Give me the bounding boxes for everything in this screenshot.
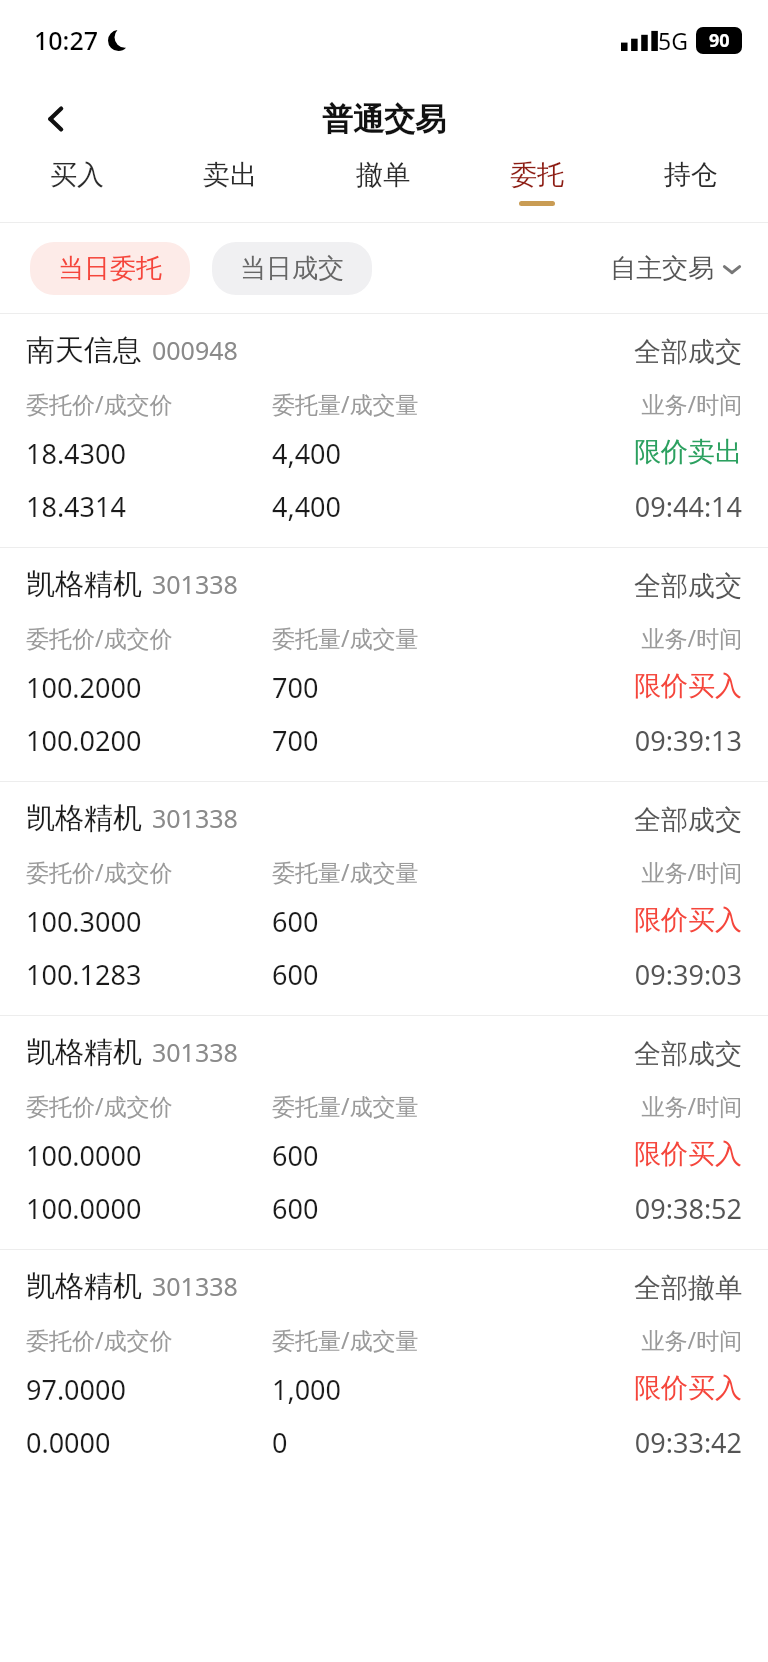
staticText: 南天信息: [26, 332, 142, 369]
staticText: 委托量/成交量: [272, 1324, 419, 1355]
staticText: 限价买入: [634, 903, 742, 937]
button[interactable]: 委托: [460, 158, 614, 222]
staticText: 凯格精机: [26, 1034, 142, 1071]
staticText: 业务/时间: [641, 622, 742, 653]
staticText: 600: [272, 1190, 319, 1227]
staticText: 委托价/成交价: [26, 1090, 173, 1121]
staticText: 业务/时间: [641, 1090, 742, 1121]
staticText: 业务/时间: [641, 1324, 742, 1355]
staticText: 业务/时间: [641, 388, 742, 419]
button[interactable]: 凯格精机: [0, 547, 768, 781]
staticText: 委托价/成交价: [26, 622, 173, 653]
staticText: 301338: [152, 567, 238, 601]
button[interactable]: 凯格精机: [0, 1015, 768, 1249]
staticText: 09:33:42: [634, 1424, 742, 1461]
staticText: 600: [272, 903, 319, 940]
button[interactable]: 买入: [0, 158, 153, 222]
staticText: 97.0000: [26, 1371, 126, 1408]
staticText: 09:39:13: [634, 722, 742, 759]
button[interactable]: 当日委托: [30, 242, 190, 295]
staticText: 撤单: [356, 158, 410, 192]
staticText: 700: [272, 722, 319, 759]
staticText: 100.3000: [26, 903, 142, 940]
staticText: 09:38:52: [634, 1190, 742, 1227]
button[interactable]: 自主交易: [610, 252, 742, 285]
staticText: 凯格精机: [26, 566, 142, 603]
button[interactable]: Back: [34, 97, 78, 141]
staticText: 0: [272, 1424, 288, 1461]
staticText: 301338: [152, 801, 238, 835]
button[interactable]: 凯格精机: [0, 781, 768, 1015]
staticText: 限价买入: [634, 1371, 742, 1405]
staticText: 委托量/成交量: [272, 388, 419, 419]
button[interactable]: 南天信息: [0, 313, 768, 547]
staticText: 卖出: [203, 158, 257, 192]
staticText: 业务/时间: [641, 856, 742, 887]
staticText: 0.0000: [26, 1424, 111, 1461]
staticText: 100.0200: [26, 722, 142, 759]
staticText: 全部撤单: [634, 1271, 742, 1305]
staticText: 委托量/成交量: [272, 622, 419, 653]
staticText: 当日成交: [240, 252, 344, 285]
button[interactable]: 凯格精机: [0, 1249, 768, 1483]
staticText: 4,400: [272, 435, 342, 472]
button[interactable]: 当日成交: [212, 242, 372, 295]
staticText: 当日委托: [58, 252, 162, 285]
staticText: 09:39:03: [634, 956, 742, 993]
staticText: 持仓: [664, 158, 718, 192]
button[interactable]: 撤单: [306, 158, 460, 222]
staticText: 凯格精机: [26, 800, 142, 837]
staticText: 100.0000: [26, 1137, 142, 1174]
staticText: 100.0000: [26, 1190, 142, 1227]
staticText: 委托量/成交量: [272, 856, 419, 887]
staticText: 委托价/成交价: [26, 1324, 173, 1355]
staticText: 18.4314: [26, 488, 126, 525]
staticText: 10:27: [34, 23, 99, 57]
staticText: 000948: [152, 333, 238, 367]
staticText: 5G: [658, 25, 688, 56]
staticText: 4,400: [272, 488, 342, 525]
staticText: 09:44:14: [634, 488, 742, 525]
staticText: 限价卖出: [634, 435, 742, 469]
staticText: 1,000: [272, 1371, 342, 1408]
staticText: 全部成交: [634, 569, 742, 603]
button[interactable]: 持仓: [614, 158, 768, 222]
staticText: 700: [272, 669, 319, 706]
staticText: 全部成交: [634, 335, 742, 369]
staticText: 凯格精机: [26, 1268, 142, 1305]
staticText: 全部成交: [634, 1037, 742, 1071]
staticText: 600: [272, 956, 319, 993]
staticText: 买入: [50, 158, 104, 192]
staticText: 委托量/成交量: [272, 1090, 419, 1121]
staticText: 90: [709, 28, 730, 53]
staticText: 自主交易: [610, 252, 714, 285]
staticText: 100.2000: [26, 669, 142, 706]
staticText: 普通交易: [322, 100, 446, 139]
staticText: 全部成交: [634, 803, 742, 837]
staticText: 限价买入: [634, 1137, 742, 1171]
staticText: 委托: [510, 158, 564, 192]
staticText: 18.4300: [26, 435, 126, 472]
staticText: 100.1283: [26, 956, 142, 993]
staticText: 委托价/成交价: [26, 856, 173, 887]
staticText: 600: [272, 1137, 319, 1174]
staticText: 301338: [152, 1269, 238, 1303]
button[interactable]: 卖出: [153, 158, 306, 222]
staticText: 限价买入: [634, 669, 742, 703]
staticText: 委托价/成交价: [26, 388, 173, 419]
staticText: 301338: [152, 1035, 238, 1069]
